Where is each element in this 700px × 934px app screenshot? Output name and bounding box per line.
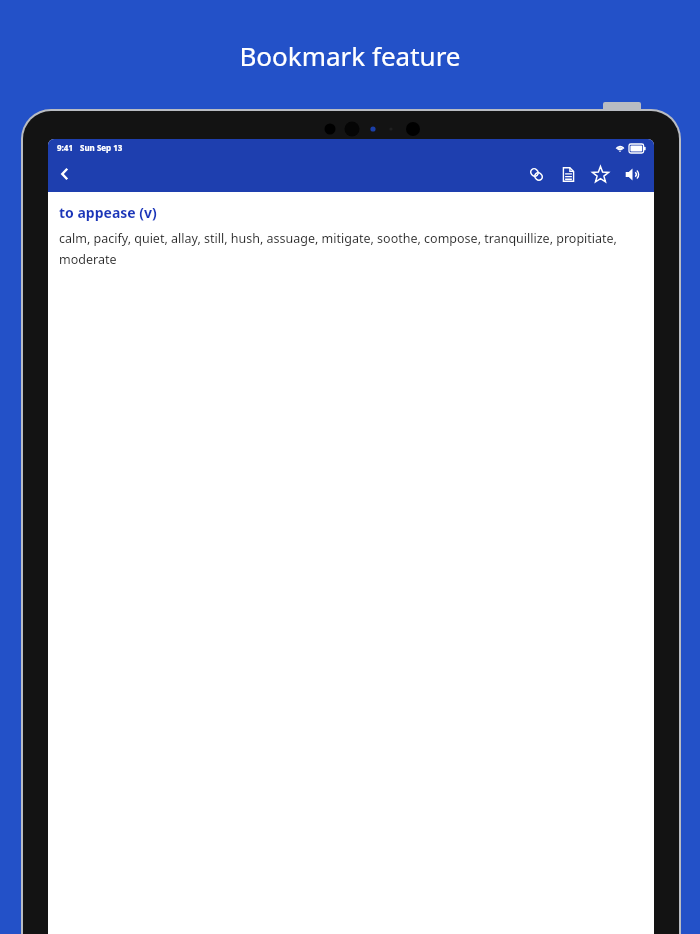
button[interactable]: Share link (520, 158, 552, 190)
staticText: 9:41 (57, 142, 73, 153)
button[interactable]: Definition (552, 158, 584, 190)
staticText: Sun Sep 13 (80, 142, 123, 153)
button[interactable]: Bookmark (584, 158, 616, 190)
staticText: calm, pacify, quiet, allay, still, hush,… (59, 230, 643, 268)
staticText: Bookmark feature (239, 38, 461, 73)
button[interactable]: Back (48, 157, 82, 191)
button[interactable]: Pronounce (616, 158, 648, 190)
staticText: to appease (v) (59, 203, 157, 222)
